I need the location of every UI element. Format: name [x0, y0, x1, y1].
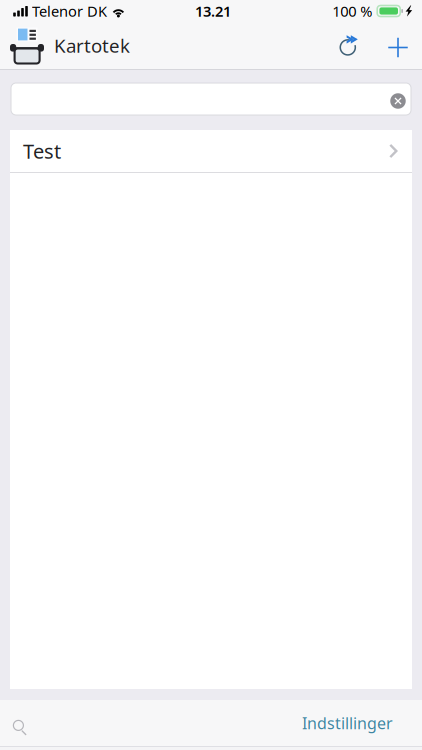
- button[interactable]: Clear search: [386, 83, 410, 115]
- button[interactable]: Test: [10, 130, 412, 173]
- staticText: 100 %: [332, 1, 372, 21]
- staticText: Indstillinger: [302, 712, 393, 734]
- button[interactable]: Search: [6, 700, 46, 745]
- button[interactable]: Refresh: [322, 22, 376, 69]
- staticText: Telenor DK: [32, 1, 107, 21]
- button[interactable]: Add: [376, 22, 420, 69]
- staticText: 13.21: [195, 1, 231, 21]
- staticText: Kartotek: [54, 33, 130, 58]
- button[interactable]: Indstillinger: [292, 700, 403, 745]
- staticText: Test: [23, 138, 61, 164]
